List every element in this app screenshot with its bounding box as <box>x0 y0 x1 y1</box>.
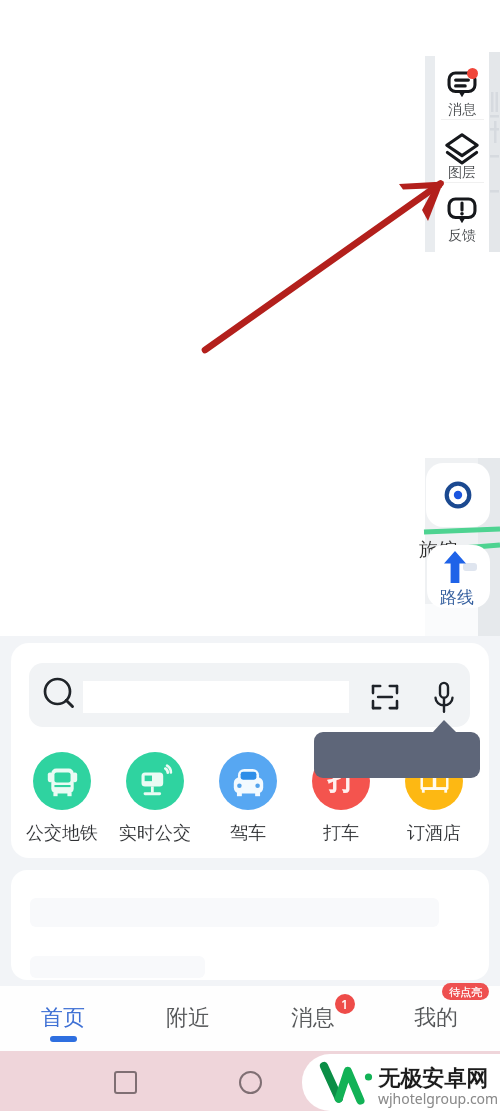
button[interactable]: 实时公交 <box>114 752 195 845</box>
staticText: 我的 <box>414 1004 458 1032</box>
staticText: 消息 <box>291 1004 335 1032</box>
button[interactable]: 图层 <box>436 120 488 182</box>
staticText: 待点亮 <box>449 985 482 999</box>
button[interactable]: My location <box>426 463 490 527</box>
staticText: 附近 <box>166 1004 210 1032</box>
staticText: 驾车 <box>230 822 266 845</box>
staticText: 首页 <box>41 1004 85 1032</box>
button[interactable]: Scan code <box>370 682 400 712</box>
button[interactable]: 驾车 <box>207 752 288 845</box>
button[interactable]: 消息 <box>436 57 488 119</box>
button[interactable]: 附近 <box>125 986 250 1051</box>
staticText: 无极安卓网 <box>378 1065 488 1093</box>
staticText: 1 <box>341 995 349 1013</box>
button[interactable]: Search <box>29 663 470 727</box>
button[interactable]: 公交地铁 <box>21 752 102 845</box>
button[interactable]: 打 <box>300 752 381 845</box>
button[interactable]: 路线 <box>427 545 490 608</box>
button[interactable]: 首页 <box>0 986 125 1051</box>
staticText: 路线 <box>440 587 474 608</box>
staticText: 实时公交 <box>119 822 191 845</box>
button[interactable]: Voice search <box>428 681 460 713</box>
staticText: 打 <box>328 764 355 798</box>
button[interactable]: 订酒店 <box>393 752 474 845</box>
staticText: 消息 <box>448 101 476 119</box>
staticText: 打车 <box>323 822 359 845</box>
staticText: 反馈 <box>448 227 476 245</box>
button[interactable]: Home <box>239 1071 262 1094</box>
button[interactable]: 消息 <box>250 986 375 1051</box>
button[interactable]: 我的 <box>375 986 500 1051</box>
staticText: wjhotelgroup.com <box>378 1089 499 1108</box>
button[interactable]: Recents <box>114 1071 137 1094</box>
staticText: 图层 <box>448 164 476 182</box>
staticText: 公交地铁 <box>26 822 98 845</box>
staticText: 订酒店 <box>407 822 461 845</box>
staticText: 旅馆 <box>419 538 457 562</box>
button[interactable]: 反馈 <box>436 183 488 245</box>
